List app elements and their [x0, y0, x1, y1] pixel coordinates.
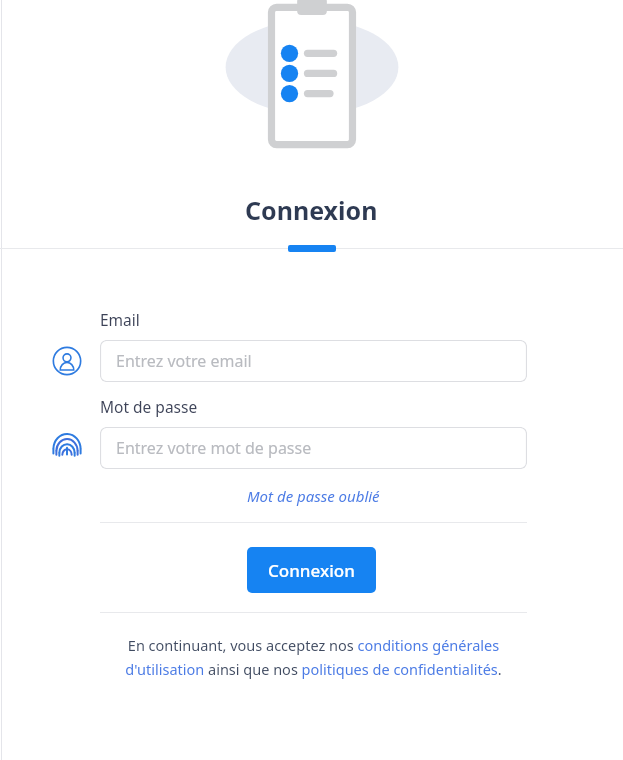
- staticText: Connexion: [268, 559, 355, 582]
- button[interactable]: Account: [50, 344, 84, 378]
- staticText: Entrez votre mot de passe: [116, 437, 312, 459]
- staticText: Mot de passe oublié: [247, 486, 380, 506]
- staticText: En continuant, vous acceptez nos conditi…: [112, 635, 515, 679]
- button[interactable]: Entrez votre mot de passe: [100, 427, 527, 469]
- staticText: Entrez votre email: [116, 350, 252, 372]
- button[interactable]: [288, 245, 336, 252]
- staticText: Email: [100, 309, 140, 330]
- button[interactable]: Connexion: [247, 547, 376, 593]
- button[interactable]: Mot de passe oublié: [241, 484, 386, 508]
- button[interactable]: Fingerprint: [50, 431, 84, 465]
- button[interactable]: Entrez votre email: [100, 340, 527, 382]
- staticText: Mot de passe: [100, 396, 198, 417]
- staticText: Connexion: [245, 193, 378, 227]
